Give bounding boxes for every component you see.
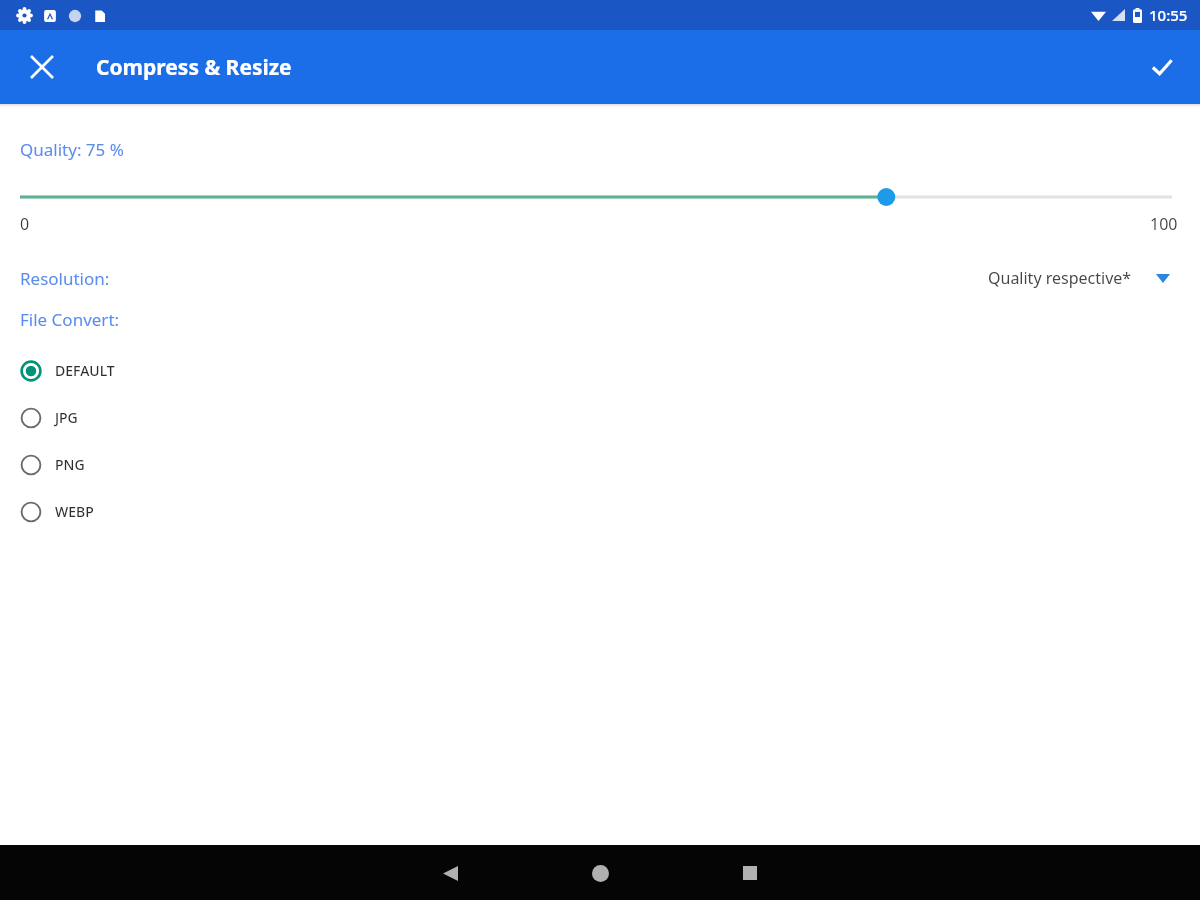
staticText: 10:55 [1149, 5, 1188, 25]
button[interactable]: DEFAULT [0, 347, 1200, 394]
staticText: Compress & Resize [96, 53, 292, 82]
button[interactable]: Home [574, 847, 626, 899]
staticText: Resolution: [20, 267, 110, 290]
staticText: 100 [1150, 213, 1178, 235]
button[interactable]: Resolution: [0, 261, 1200, 295]
button[interactable]: Apply [1138, 43, 1186, 91]
staticText: File Convert: [20, 308, 120, 331]
staticText: Quality respective* [988, 267, 1132, 289]
button[interactable]: Close [18, 43, 66, 91]
button[interactable]: JPG [0, 394, 1200, 441]
staticText: WEBP [55, 502, 94, 521]
button[interactable]: WEBP [0, 488, 1200, 535]
staticText: JPG [55, 408, 78, 427]
staticText: 0 [20, 213, 30, 235]
staticText: DEFAULT [55, 361, 115, 380]
button[interactable]: Back [424, 847, 476, 899]
staticText: PNG [55, 455, 85, 474]
button[interactable]: Recent apps [724, 847, 776, 899]
button[interactable]: PNG [0, 441, 1200, 488]
staticText: Quality: 75 % [20, 138, 124, 161]
button[interactable] [0, 184, 1200, 210]
